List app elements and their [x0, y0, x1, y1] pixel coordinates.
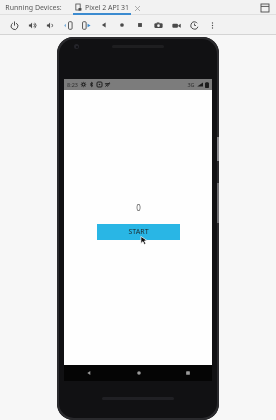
button[interactable]: Rotate left	[59, 16, 77, 34]
button[interactable]: Volume up	[23, 16, 41, 34]
button[interactable]: More	[203, 16, 221, 34]
button[interactable]: START	[97, 224, 180, 240]
button[interactable]: Recent apps	[163, 365, 212, 381]
staticText: Pixel 2 API 31	[85, 3, 129, 13]
button[interactable]: Back	[64, 365, 114, 381]
button[interactable]: Close tab	[133, 4, 141, 12]
button[interactable]: Screenshot	[149, 16, 167, 34]
button[interactable]: Back	[95, 16, 113, 34]
staticText: Running Devices:	[5, 3, 62, 13]
staticText: 8:23	[67, 81, 78, 88]
staticText: START	[128, 227, 149, 237]
button[interactable]: Pixel 2 API 31	[75, 0, 141, 15]
button[interactable]: Volume down	[41, 16, 59, 34]
staticText: 0	[136, 202, 141, 213]
button[interactable]: Overview	[131, 16, 149, 34]
staticText: 3G	[187, 81, 195, 88]
button[interactable]: Rotate right	[77, 16, 95, 34]
button[interactable]: Home	[113, 16, 131, 34]
button[interactable]: History	[185, 16, 203, 34]
button[interactable]: Home	[114, 365, 163, 381]
button[interactable]: Layout options	[258, 1, 272, 15]
button[interactable]: Power	[5, 16, 23, 34]
button[interactable]: Record screen	[167, 16, 185, 34]
